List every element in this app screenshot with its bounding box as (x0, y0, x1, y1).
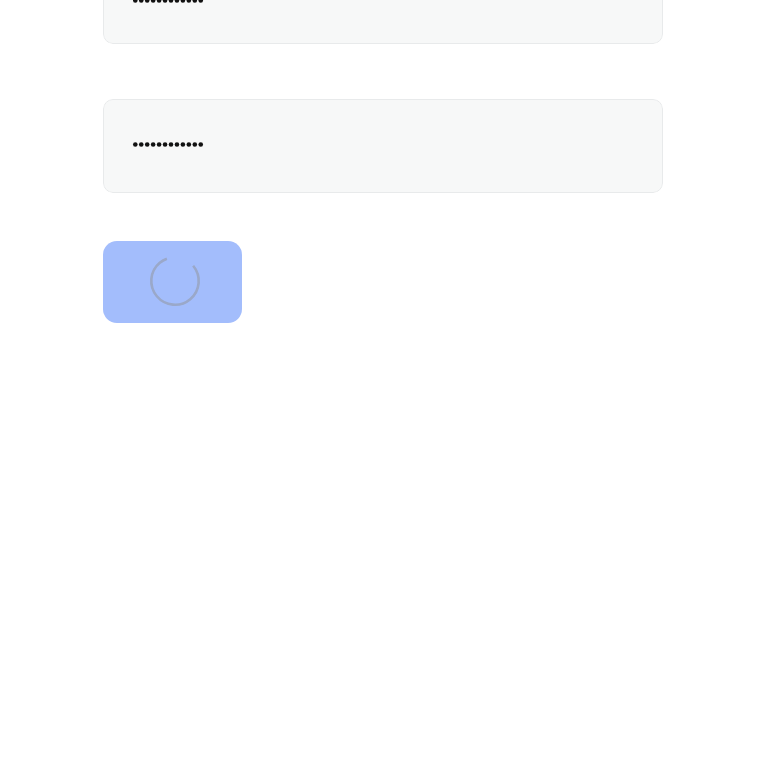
button[interactable] (103, 0, 663, 44)
button[interactable]: Submit, loading (103, 241, 242, 323)
button[interactable] (103, 99, 663, 193)
